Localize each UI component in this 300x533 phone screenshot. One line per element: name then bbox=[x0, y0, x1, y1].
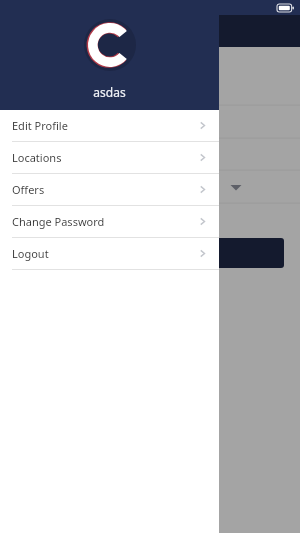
staticText: Change Password bbox=[12, 214, 197, 229]
button[interactable]: Edit Profile bbox=[0, 110, 219, 141]
button[interactable] bbox=[16, 238, 284, 268]
staticText: Edit Profile bbox=[12, 118, 197, 133]
staticText: Locations bbox=[12, 150, 197, 165]
staticText: Offers bbox=[12, 182, 197, 197]
button[interactable]: Locations bbox=[0, 142, 219, 173]
button[interactable]: Logout bbox=[0, 238, 219, 269]
staticText: Logout bbox=[12, 246, 197, 261]
button[interactable]: Change Password bbox=[0, 206, 219, 237]
button[interactable]: Offers bbox=[0, 174, 219, 205]
staticText: asdas bbox=[93, 84, 126, 100]
